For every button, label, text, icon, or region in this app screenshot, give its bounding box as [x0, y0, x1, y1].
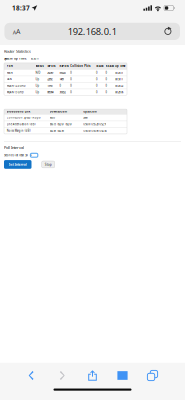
staticText: Up Time: [115, 64, 126, 68]
staticText: 309252: [59, 90, 65, 94]
staticText: 2608: [83, 116, 87, 119]
staticText: 0: [96, 90, 97, 94]
staticText: Up: [35, 77, 39, 81]
staticText: Up: [35, 84, 39, 87]
staticText: 0: [70, 71, 71, 74]
staticText: Seconds (at least 3s): [4, 153, 28, 157]
staticText: Noise Margin (dB): [7, 129, 31, 133]
staticText: LAN: [7, 77, 12, 81]
staticText: Up: [35, 90, 39, 94]
staticText: Set Interval: [9, 162, 27, 167]
staticText: WLAN (5 GHz): [7, 90, 24, 94]
staticText: 0: [70, 77, 71, 81]
staticText: 00:28:51: [115, 71, 123, 74]
staticText: U50.03 U55.06 U52.54: [83, 129, 106, 133]
staticText: Line Attenuation (dB): [7, 122, 36, 126]
staticText: 0: [96, 77, 97, 81]
button[interactable]: Page settings: [4, 23, 28, 40]
staticText: TxPkts: [47, 64, 55, 68]
button[interactable]: Bookmarks: [107, 363, 137, 387]
staticText: 0: [70, 90, 71, 94]
staticText: Upstream: [83, 110, 96, 113]
staticText: 0: [106, 71, 107, 74]
staticText: 00:30:11: [30, 57, 38, 60]
staticText: Router Statistics: [4, 49, 31, 54]
staticText: 0: [59, 84, 60, 87]
button[interactable]: Set Interval: [4, 160, 31, 169]
staticText: 0: [106, 90, 107, 94]
staticText: 00:28:06: [115, 90, 123, 94]
staticText: 052.58 052.56: [50, 129, 64, 133]
staticText: WLAN (2.4 GHz): [7, 84, 26, 87]
staticText: 0: [106, 84, 107, 87]
staticText: Collision Pkts: [70, 64, 90, 68]
staticText: Downstream: [50, 110, 67, 113]
staticText: RxPkts: [59, 64, 68, 68]
staticText: Connection Speed (Kbps): [7, 116, 41, 119]
staticText: Stop: [45, 162, 52, 167]
staticText: 050.73 052.67 052.67: [50, 122, 72, 126]
staticText: 19765: [47, 84, 52, 87]
staticText: 54373: [50, 116, 55, 119]
staticText: 1489: [59, 77, 63, 81]
button[interactable]: Back: [17, 363, 47, 387]
staticText: WAN: [7, 71, 13, 74]
staticText: 262987: [47, 71, 53, 74]
staticText: Tx Ack: [96, 64, 104, 68]
button[interactable]: Share: [77, 363, 107, 387]
staticText: 22892: [47, 77, 52, 81]
staticText: 0: [106, 77, 107, 81]
button[interactable]: Reload page: [156, 23, 180, 40]
staticText: 18:37: [12, 4, 30, 12]
staticText: Status: [35, 64, 43, 68]
staticText: 885904: [47, 90, 53, 94]
staticText: 192.168.0.1: [68, 25, 117, 38]
button[interactable]: Stop: [42, 161, 55, 168]
staticText: A: [16, 27, 20, 36]
staticText: N/D: [35, 71, 40, 74]
staticText: 0: [96, 71, 97, 74]
staticText: U50.01 U55.28 U52.91: [83, 122, 106, 126]
staticText: 00:28:22: [115, 84, 123, 87]
staticText: Poll Interval: [4, 145, 24, 150]
staticText: 0: [96, 84, 97, 87]
staticText: Rx Ack: [106, 64, 115, 68]
staticText: Port: [7, 64, 13, 68]
staticText: Broadband Link: [7, 110, 31, 113]
button[interactable]: Tabs: [137, 363, 167, 387]
staticText: 00:30:11: [115, 77, 123, 81]
staticText: System Up Time: [4, 57, 27, 60]
button[interactable]: Forward: [47, 363, 77, 387]
staticText: 895220: [59, 71, 65, 74]
staticText: A: [13, 29, 16, 36]
staticText: 0: [70, 84, 71, 87]
